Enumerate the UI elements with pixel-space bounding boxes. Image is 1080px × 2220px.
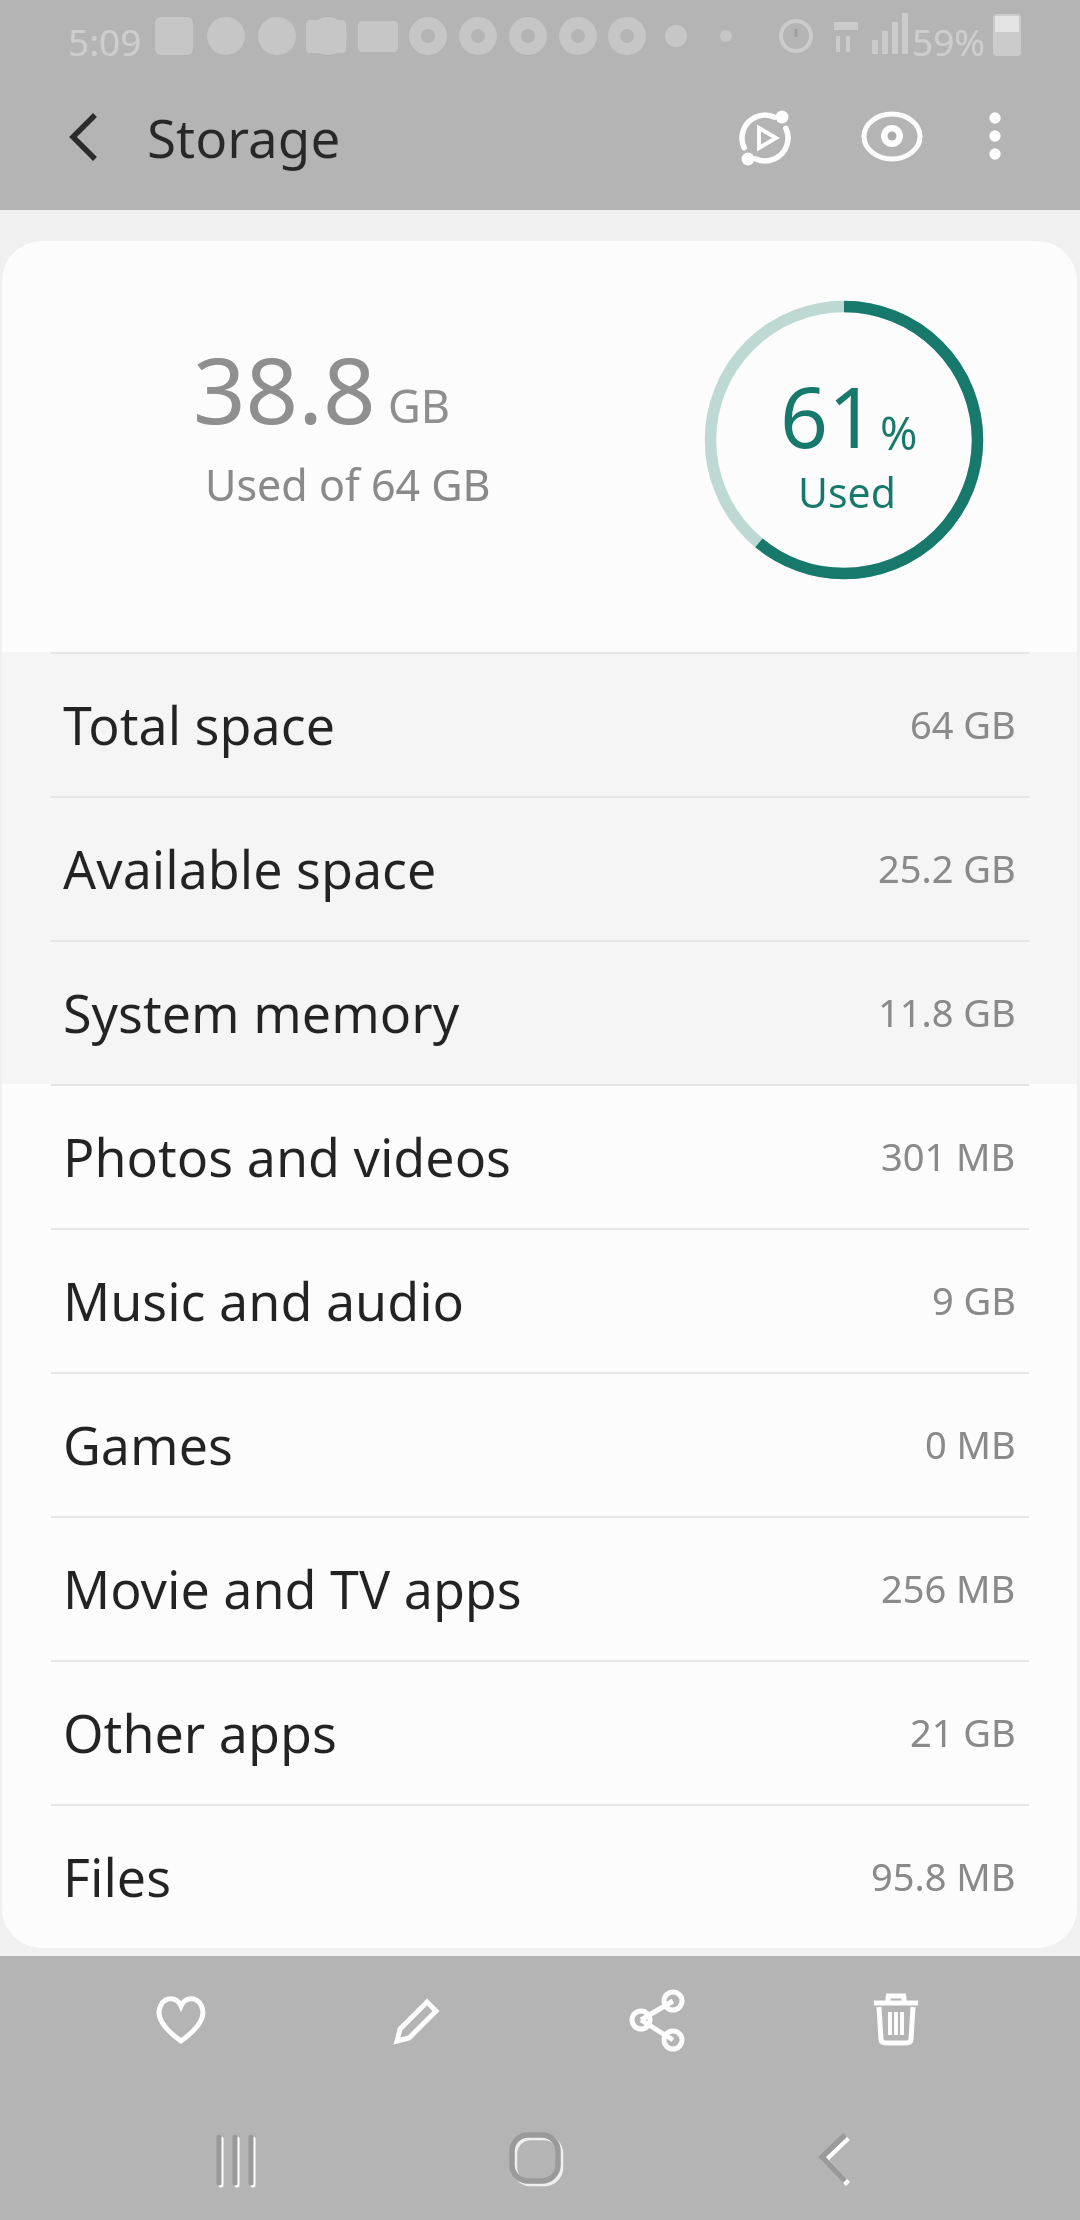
staticText: 25.2 GB — [878, 842, 1016, 894]
button[interactable] — [775, 2122, 895, 2198]
staticText: Games — [63, 1409, 233, 1480]
staticText: 95.8 MB — [871, 1850, 1016, 1902]
button[interactable]: Total space — [2, 652, 1077, 796]
staticText: Other apps — [63, 1697, 337, 1768]
staticText: Music and audio — [63, 1265, 465, 1336]
staticText: 64 GB — [910, 698, 1016, 750]
button[interactable]: Music and audio — [2, 1228, 1077, 1372]
button[interactable]: Available space — [2, 796, 1077, 940]
button[interactable] — [175, 2122, 295, 2198]
staticText: 0 MB — [925, 1418, 1016, 1470]
staticText: GB — [388, 375, 451, 436]
staticText: 61 — [780, 358, 877, 472]
button[interactable] — [48, 113, 120, 161]
staticText: Total space — [63, 689, 335, 760]
staticText: % — [880, 402, 918, 463]
button[interactable]: Files — [2, 1804, 1077, 1948]
staticText: Movie and TV apps — [63, 1553, 522, 1624]
staticText: 38.8 — [193, 326, 376, 451]
staticText: Used of 64 GB — [205, 455, 491, 514]
button[interactable]: Photos and videos — [2, 1084, 1077, 1228]
button[interactable]: Games — [2, 1372, 1077, 1516]
button[interactable] — [852, 96, 932, 176]
staticText: Used — [798, 464, 896, 520]
staticText: 256 MB — [881, 1562, 1016, 1614]
button[interactable] — [379, 1979, 459, 2059]
staticText: 11.8 GB — [878, 986, 1016, 1038]
button[interactable] — [141, 1979, 221, 2059]
staticText: Photos and videos — [63, 1121, 512, 1192]
button[interactable]: System memory — [2, 940, 1077, 1084]
staticText: 9 GB — [932, 1274, 1016, 1326]
staticText: System memory — [63, 977, 460, 1048]
button[interactable]: Movie and TV apps — [2, 1516, 1077, 1660]
button[interactable] — [955, 96, 1035, 176]
staticText: 5:09 — [68, 16, 142, 66]
staticText: 59% — [912, 16, 986, 66]
button[interactable] — [617, 1979, 697, 2059]
staticText: Files — [63, 1841, 172, 1912]
staticText: Available space — [63, 833, 437, 904]
button[interactable] — [856, 1979, 936, 2059]
button[interactable]: Other apps — [2, 1660, 1077, 1804]
staticText: 21 GB — [910, 1706, 1016, 1758]
button[interactable] — [477, 2122, 597, 2198]
staticText: 301 MB — [881, 1130, 1016, 1182]
button[interactable] — [725, 98, 805, 178]
staticText: Storage — [147, 101, 341, 173]
